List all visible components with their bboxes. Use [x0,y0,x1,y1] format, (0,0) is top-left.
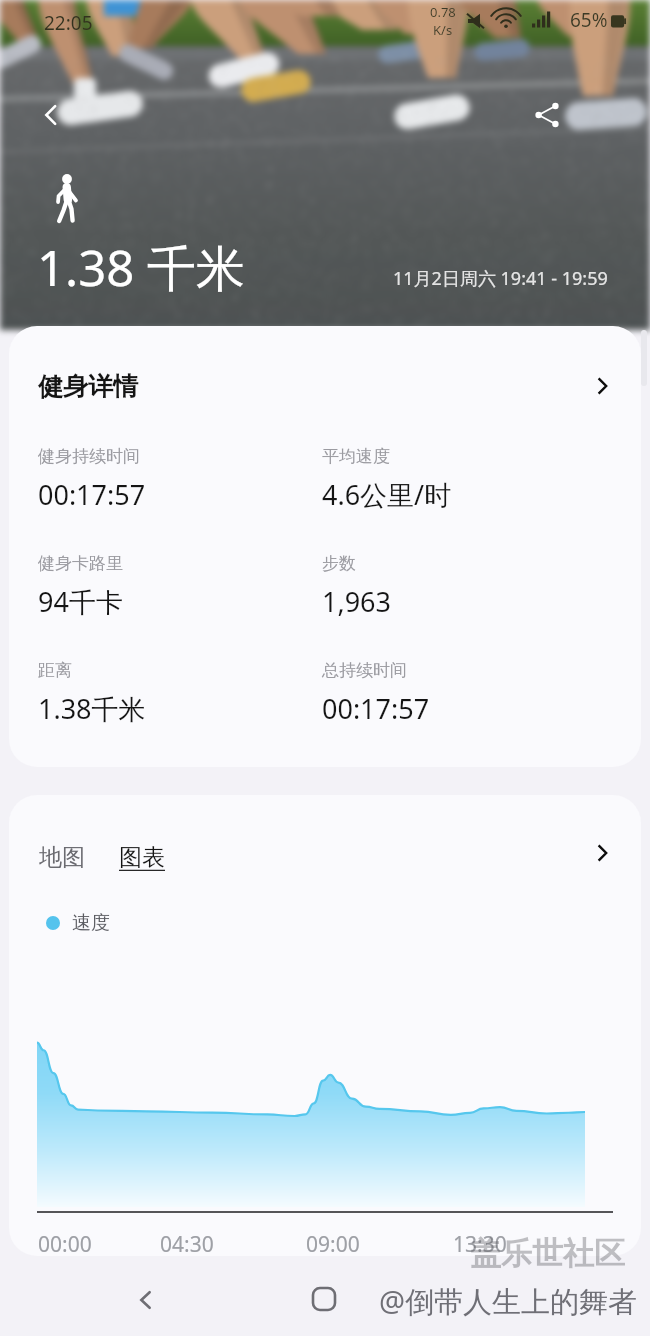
staticText: 00:17:57 [38,476,146,513]
staticText: 步数 [322,553,356,574]
staticText: 健身卡路里 [38,553,123,574]
staticText: @倒带人生上的舞者 [379,1281,638,1321]
staticText: K/s [433,21,453,39]
staticText: 65% [570,7,608,33]
staticText: 距离 [38,660,72,681]
button[interactable]: 图表 [115,829,169,878]
staticText: 1.38千米 [38,690,146,727]
staticText: 健身持续时间 [38,446,140,467]
staticText: 图表 [119,843,165,872]
staticText: 平均速度 [322,446,390,467]
staticText: 22:05 [44,10,93,36]
button[interactable]: Back [118,1272,174,1328]
staticText: 09:00 [306,1230,360,1256]
staticText: 1,963 [322,583,392,620]
staticText: 00:17:57 [322,690,430,727]
staticText: 总持续时间 [322,660,407,681]
staticText: 健身详情 [38,371,138,402]
staticText: 盖乐世社区 [470,1234,625,1273]
staticText: 11月2日周六 19:41 - 19:59 [393,266,608,291]
button[interactable]: 地图 [35,829,89,878]
button[interactable]: Home [296,1271,352,1327]
staticText: 94千卡 [38,583,123,620]
staticText: 速度 [72,911,110,935]
staticText: 00:00 [38,1230,92,1256]
button[interactable]: 健身详情 [9,326,641,446]
staticText: 13:30 [453,1230,507,1256]
staticText: 4.6公里/时 [322,476,452,513]
button[interactable]: Back [28,92,74,138]
staticText: 04:30 [160,1230,214,1256]
staticText: 1.38 千米 [37,234,245,301]
button[interactable]: Share [524,92,570,138]
staticText: 0.78 [430,3,456,21]
staticText: 地图 [39,843,85,872]
